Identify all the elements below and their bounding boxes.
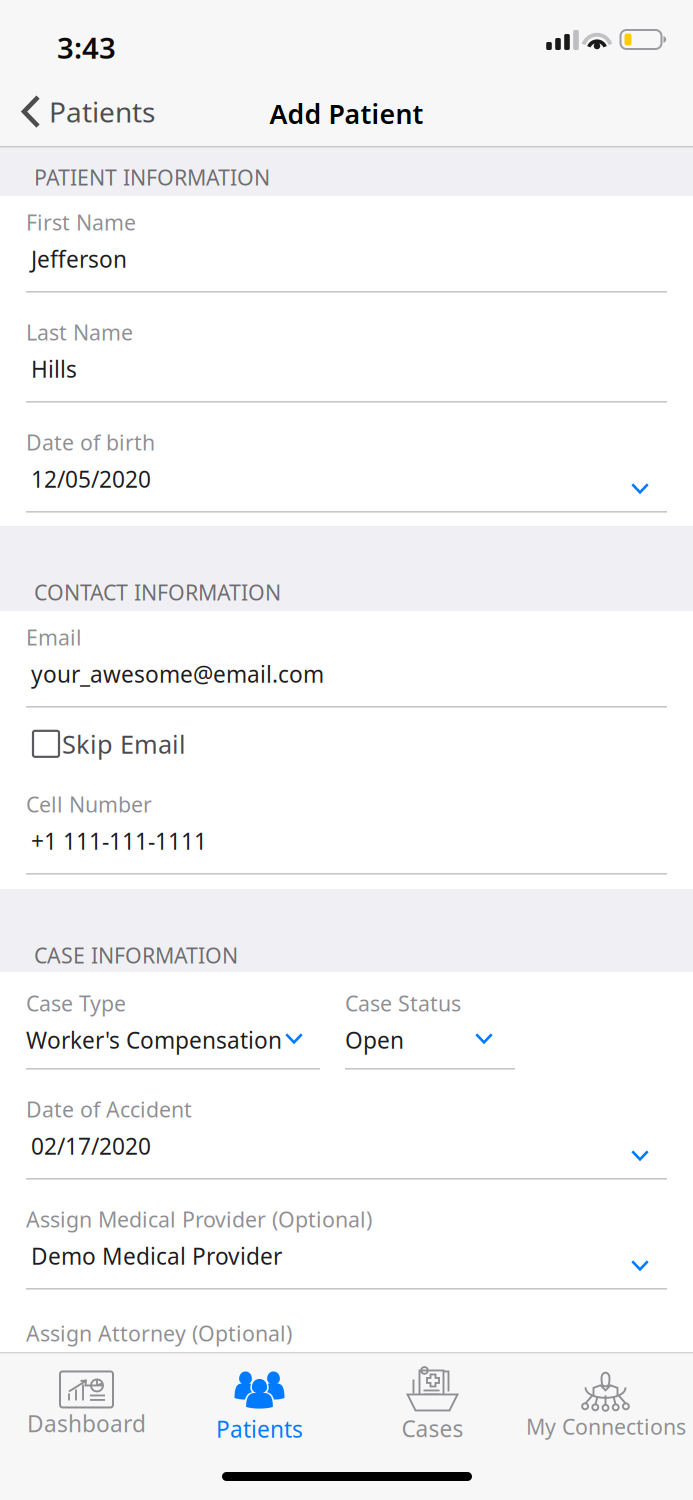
staticText: Cell Number (26, 790, 152, 818)
button[interactable]: Patients (173, 1357, 346, 1453)
staticText: Worker's Compensation (26, 1025, 282, 1055)
staticText: CONTACT INFORMATION (34, 578, 281, 606)
staticText: Jefferson (31, 244, 127, 274)
button[interactable]: Dashboard (0, 1357, 173, 1453)
button[interactable]: Cases (346, 1357, 519, 1453)
staticText: PATIENT INFORMATION (34, 163, 270, 191)
staticText: 3:43 (57, 28, 116, 67)
staticText: Demo Medical Provider (31, 1241, 282, 1271)
staticText: Last Name (26, 318, 133, 346)
staticText: Case Type (26, 989, 126, 1017)
staticText: First Name (26, 208, 136, 236)
staticText: Patients (49, 93, 155, 130)
staticText: My Connections (526, 1412, 686, 1441)
staticText: Assign Medical Provider (Optional) (26, 1205, 372, 1233)
staticText: Cases (401, 1413, 463, 1443)
staticText: Add Patient (269, 96, 423, 131)
staticText: Skip Email (62, 727, 186, 761)
staticText: Patients (216, 1414, 303, 1444)
staticText: Case Status (345, 989, 461, 1017)
staticText: Hills (31, 354, 77, 384)
staticText: Date of Accident (26, 1095, 192, 1123)
button[interactable]: Patients (0, 0, 693, 130)
button[interactable]: Skip Email (0, 0, 693, 761)
staticText: 12/05/2020 (31, 464, 151, 494)
staticText: +1 111-111-1111 (31, 826, 207, 856)
staticText: Date of birth (26, 428, 155, 456)
staticText: Dashboard (27, 1408, 146, 1438)
staticText: Open (345, 1025, 404, 1055)
staticText: your_awesome@email.com (31, 659, 324, 689)
staticText: CASE INFORMATION (34, 941, 238, 969)
staticText: Email (26, 623, 82, 651)
staticText: 02/17/2020 (31, 1131, 151, 1161)
staticText: Assign Attorney (Optional) (26, 1319, 292, 1347)
button[interactable]: My Connections (519, 1357, 693, 1453)
